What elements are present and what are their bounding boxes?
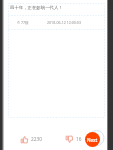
button[interactable]: Next xyxy=(85,132,100,147)
staticText: Next xyxy=(87,137,98,143)
staticText: 16 xyxy=(76,136,82,143)
button[interactable]: Dislike xyxy=(66,134,82,145)
staticText: 2230 xyxy=(31,136,42,143)
staticText: 2018-06-12 12:00:03 xyxy=(47,20,81,25)
button[interactable]: Like xyxy=(21,134,42,145)
staticText: © 77楼 xyxy=(17,20,29,25)
staticText: 四十年，正在影响一代人！ xyxy=(10,5,63,11)
